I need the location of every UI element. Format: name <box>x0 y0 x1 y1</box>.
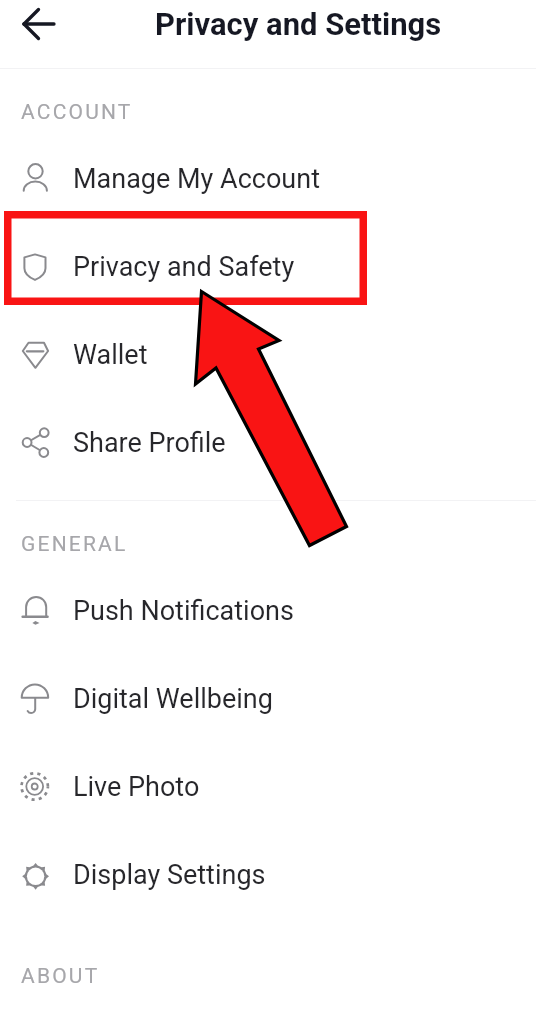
button[interactable]: Back <box>16 1 62 47</box>
staticText: Manage My Account <box>73 163 320 195</box>
staticText: GENERAL <box>21 532 128 557</box>
staticText: Push Notifications <box>73 595 294 627</box>
button[interactable]: Digital Wellbeing <box>0 653 536 741</box>
staticText: Privacy and Settings <box>155 6 442 42</box>
button[interactable]: Display Settings <box>0 829 536 917</box>
button[interactable]: Wallet <box>0 309 536 397</box>
button[interactable]: Manage My Account <box>0 133 536 221</box>
staticText: ABOUT <box>21 964 100 989</box>
staticText: ACCOUNT <box>21 100 133 125</box>
staticText: Live Photo <box>73 771 200 803</box>
button[interactable]: Privacy and Safety <box>0 221 536 309</box>
staticText: Share Profile <box>73 427 226 459</box>
button[interactable]: Push Notifications <box>0 565 536 653</box>
staticText: Digital Wellbeing <box>73 683 273 715</box>
staticText: Display Settings <box>73 859 266 891</box>
staticText: Privacy and Safety <box>73 251 295 283</box>
button[interactable]: Share Profile <box>0 397 536 485</box>
button[interactable]: Live Photo <box>0 741 536 829</box>
staticText: Wallet <box>73 339 148 371</box>
